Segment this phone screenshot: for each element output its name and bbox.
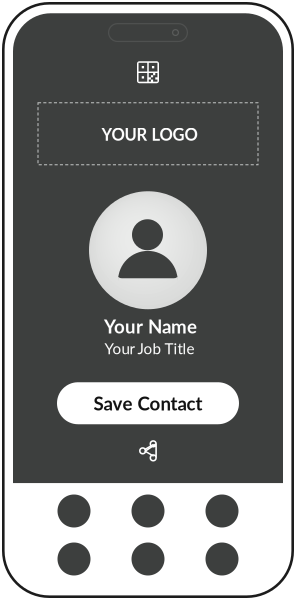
- staticText: Your Name: [104, 315, 197, 337]
- staticText: Save Contact: [93, 392, 202, 414]
- button[interactable]: Save Contact: [57, 382, 239, 424]
- staticText: Your Job Title: [104, 339, 194, 357]
- staticText: YOUR LOGO: [101, 124, 197, 144]
- button[interactable]: Share: [139, 440, 156, 461]
